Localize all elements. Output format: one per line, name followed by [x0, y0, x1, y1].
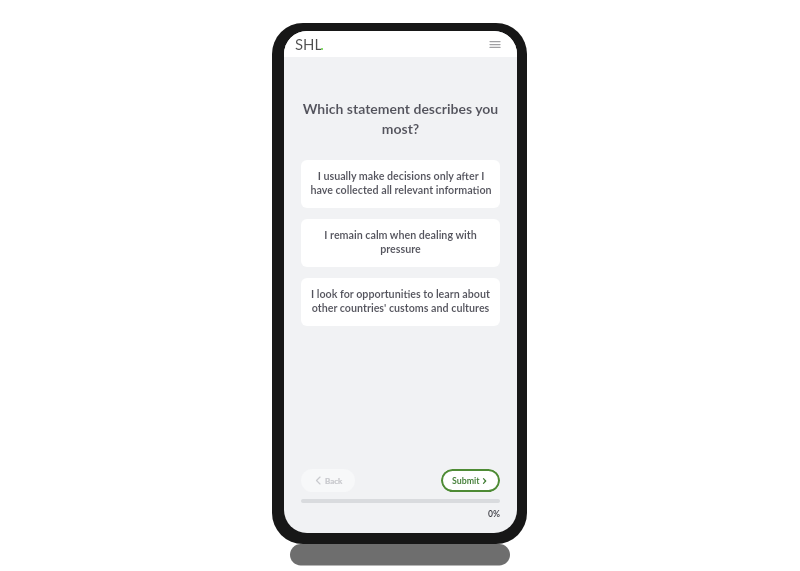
staticText: I usually make decisions only after I ha…	[310, 169, 492, 196]
staticText: most?	[294, 120, 507, 137]
button[interactable]: I look for opportunities to learn about …	[301, 278, 500, 326]
staticText: 0%	[488, 509, 501, 519]
button[interactable]: I remain calm when dealing with pressure	[301, 219, 500, 267]
button[interactable]: Submit	[441, 469, 500, 492]
staticText: Submit	[452, 475, 480, 486]
staticText: I remain calm when dealing with pressure	[324, 228, 477, 255]
button[interactable]: Open menu	[487, 36, 503, 52]
staticText: Which statement describes you	[294, 100, 507, 117]
button[interactable]: I usually make decisions only after I ha…	[301, 160, 500, 208]
staticText: Back	[325, 476, 343, 486]
staticText: SHL	[295, 35, 323, 53]
button[interactable]: Back	[301, 469, 355, 492]
staticText: I look for opportunities to learn about …	[311, 287, 490, 314]
